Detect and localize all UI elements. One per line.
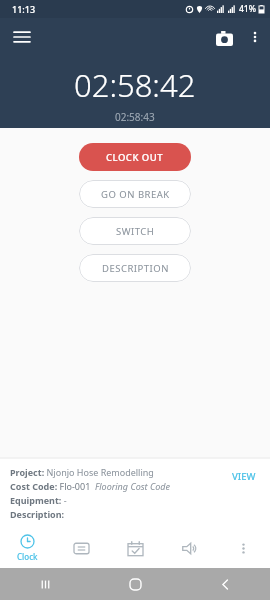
staticText: 02:58:42 bbox=[74, 64, 196, 106]
staticText: DESCRIPTION bbox=[102, 262, 169, 275]
button[interactable]: GO ON BREAK bbox=[79, 180, 191, 208]
staticText: Description: bbox=[10, 508, 65, 520]
button[interactable]: Announcements bbox=[162, 528, 216, 568]
button[interactable]: Schedule bbox=[108, 528, 162, 568]
button[interactable]: CLOCK OUT bbox=[79, 143, 191, 171]
staticText: Project: Njonjo Hose Remodelling bbox=[10, 466, 154, 478]
button[interactable]: Clock bbox=[0, 528, 54, 568]
staticText: VIEW bbox=[232, 470, 256, 483]
staticText: CLOCK OUT bbox=[106, 151, 164, 164]
button[interactable]: VIEW bbox=[228, 466, 260, 487]
button[interactable]: Notes bbox=[54, 528, 108, 568]
staticText: Clock bbox=[17, 551, 38, 562]
staticText: 41% bbox=[239, 3, 256, 15]
staticText: 11:13 bbox=[12, 3, 36, 15]
button[interactable]: More bbox=[216, 528, 270, 568]
staticText: SWITCH bbox=[116, 225, 155, 238]
staticText: Equipment: - bbox=[10, 494, 67, 506]
button[interactable]: Menu bbox=[6, 21, 38, 53]
staticText: 02:58:43 bbox=[115, 110, 155, 124]
button[interactable]: SWITCH bbox=[79, 217, 191, 245]
button[interactable]: DESCRIPTION bbox=[79, 254, 191, 282]
button[interactable]: Home bbox=[90, 568, 180, 600]
staticText: GO ON BREAK bbox=[101, 188, 170, 201]
button[interactable]: More options bbox=[240, 22, 270, 52]
staticText: Cost Code: Flo-001 Flooring Cost Code bbox=[10, 480, 170, 492]
button[interactable]: Recents bbox=[0, 568, 90, 600]
button[interactable]: Back bbox=[180, 568, 270, 600]
button[interactable]: Camera bbox=[208, 21, 240, 53]
